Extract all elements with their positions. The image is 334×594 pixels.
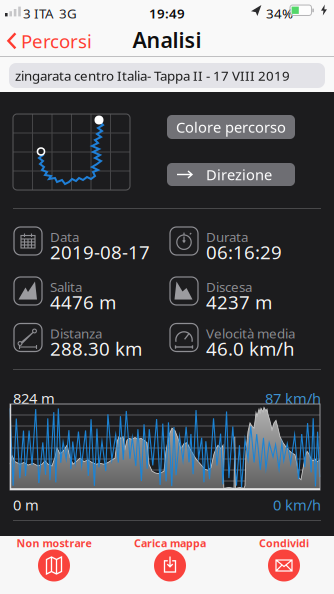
staticText: zingarata centro Italia- Tappa II - 17 V…: [15, 67, 290, 84]
staticText: 2019-08-17: [50, 239, 150, 264]
staticText: Discesa: [206, 278, 252, 296]
staticText: Durata: [206, 228, 248, 246]
staticText: Percorsi: [21, 28, 92, 53]
button[interactable]: Direzione: [167, 163, 295, 186]
staticText: Carica mappa: [134, 536, 206, 550]
staticText: Salita: [50, 278, 82, 296]
staticText: 288.30 km: [50, 336, 142, 361]
staticText: 87 km/h: [265, 388, 321, 408]
staticText: Direzione: [206, 165, 272, 184]
staticText: 3 ITA: [23, 4, 54, 22]
button[interactable]: Non mostrare: [6, 537, 102, 581]
staticText: Non mostrare: [16, 536, 91, 550]
staticText: 0 m: [13, 495, 39, 514]
staticText: 06:16:29: [206, 239, 282, 264]
staticText: 0 km/h: [273, 495, 321, 514]
staticText: 34%: [266, 4, 293, 22]
staticText: Data: [50, 228, 79, 246]
staticText: 3G: [59, 4, 77, 22]
staticText: 4476 m: [50, 289, 116, 314]
staticText: Colore percorso: [176, 117, 286, 137]
staticText: 46.0 km/h: [206, 336, 295, 361]
button[interactable]: Condividi: [236, 537, 332, 581]
staticText: 19:49: [149, 4, 185, 22]
staticText: Distanza: [50, 324, 102, 342]
button[interactable]: Percorsi: [7, 28, 92, 53]
button[interactable]: zingarata centro Italia- Tappa II - 17 V…: [9, 63, 325, 88]
button[interactable]: Colore percorso: [167, 115, 295, 139]
staticText: Analisi: [132, 25, 201, 54]
staticText: Velocità media: [206, 324, 295, 342]
staticText: 4237 m: [206, 289, 272, 314]
staticText: 824 m: [13, 388, 55, 408]
button[interactable]: Carica mappa: [122, 537, 218, 581]
staticText: Condividi: [259, 536, 309, 550]
